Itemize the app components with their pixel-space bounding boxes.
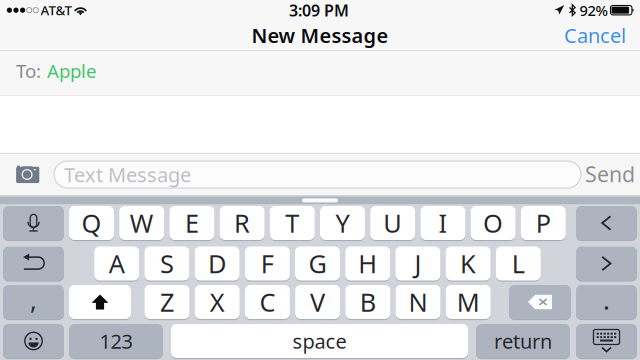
staticText: . [603, 283, 610, 317]
button[interactable]: 123 [69, 323, 163, 359]
staticText: Text Message [64, 161, 191, 188]
staticText: Z [160, 285, 174, 319]
button[interactable] [576, 205, 637, 241]
button[interactable]: . [576, 284, 637, 320]
staticText: X [210, 285, 225, 319]
button[interactable]: E [169, 205, 214, 241]
staticText: A [109, 247, 125, 280]
staticText: H [358, 247, 377, 280]
button[interactable] [576, 323, 637, 359]
staticText: AT&T [40, 1, 71, 19]
staticText: E [185, 206, 199, 240]
staticText: K [460, 247, 476, 280]
staticText: space [292, 328, 346, 354]
button[interactable]: U [370, 205, 415, 241]
button[interactable]: Take photo [13, 159, 47, 189]
staticText: Y [335, 206, 349, 240]
button[interactable] [3, 323, 64, 359]
staticText: O [483, 206, 503, 240]
staticText: M [457, 285, 480, 319]
button[interactable]: , [3, 284, 64, 320]
button[interactable]: Send [582, 158, 638, 190]
button[interactable]: return [476, 323, 570, 359]
button[interactable]: B [345, 284, 390, 320]
button[interactable] [509, 284, 571, 320]
button[interactable]: L [496, 245, 541, 282]
button[interactable]: G [295, 245, 340, 282]
button[interactable]: A [94, 245, 139, 282]
staticText: B [360, 285, 376, 319]
staticText: New Message [251, 22, 388, 48]
staticText: I [438, 206, 447, 240]
button[interactable]: Z [144, 284, 189, 320]
staticText: Send [585, 160, 635, 188]
button[interactable]: S [144, 245, 189, 282]
button[interactable]: M [446, 284, 491, 320]
button[interactable]: D [195, 245, 240, 282]
button[interactable]: Q [69, 205, 114, 241]
staticText: N [408, 285, 427, 319]
staticText: G [308, 247, 326, 280]
staticText: U [383, 206, 402, 240]
staticText: 123 [99, 328, 132, 354]
staticText: C [259, 285, 275, 319]
staticText: W [130, 206, 154, 240]
staticText: V [310, 285, 325, 319]
button[interactable]: J [395, 245, 440, 282]
staticText: J [414, 247, 421, 280]
button[interactable]: X [195, 284, 240, 320]
staticText: L [512, 247, 525, 280]
button[interactable]: Y [320, 205, 365, 241]
button[interactable]: H [345, 245, 390, 282]
button[interactable]: W [119, 205, 164, 241]
staticText: S [160, 247, 174, 280]
button[interactable]: I [420, 205, 465, 241]
staticText: , [30, 283, 37, 317]
staticText: return [494, 328, 552, 354]
button[interactable]: O [471, 205, 516, 241]
button[interactable] [3, 245, 64, 282]
button[interactable]: space [171, 323, 468, 359]
staticText: F [261, 247, 274, 280]
staticText: To: [16, 58, 41, 83]
button[interactable] [69, 284, 131, 320]
button[interactable]: F [245, 245, 290, 282]
button[interactable]: N [395, 284, 440, 320]
button[interactable]: V [295, 284, 340, 320]
staticText: 3:09 PM [289, 0, 349, 21]
button[interactable]: P [521, 205, 566, 241]
button[interactable] [3, 205, 64, 241]
button[interactable]: K [446, 245, 491, 282]
button[interactable]: T [270, 205, 315, 241]
staticText: D [208, 247, 226, 280]
staticText: Q [81, 206, 101, 240]
staticText: Cancel [564, 22, 626, 48]
button[interactable]: Cancel [554, 20, 636, 50]
staticText: 92% [579, 0, 607, 20]
button[interactable]: R [220, 205, 265, 241]
staticText: Apple [47, 58, 97, 83]
staticText: P [536, 206, 551, 240]
button[interactable] [576, 245, 637, 282]
button[interactable]: C [245, 284, 290, 320]
staticText: R [234, 206, 250, 240]
staticText: T [285, 206, 299, 240]
